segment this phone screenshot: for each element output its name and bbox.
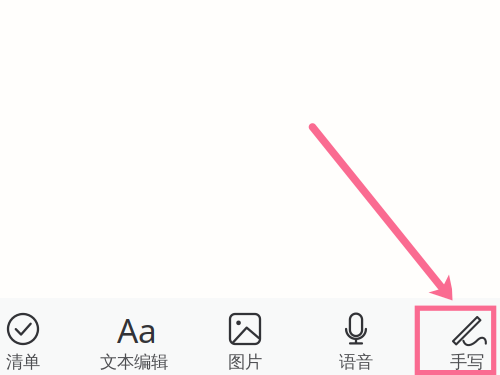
button[interactable]: 清单 [0,300,78,374]
staticText: Aa [117,308,157,352]
button[interactable]: 手写 [411,300,500,374]
staticText: 语音 [339,351,373,373]
button[interactable]: Aa [78,300,189,374]
staticText: 手写 [450,351,484,373]
staticText: 文本编辑 [100,351,168,373]
staticText: 图片 [228,351,262,373]
staticText: 清单 [6,351,40,373]
button[interactable]: 图片 [189,300,300,374]
button[interactable]: 语音 [300,300,411,374]
